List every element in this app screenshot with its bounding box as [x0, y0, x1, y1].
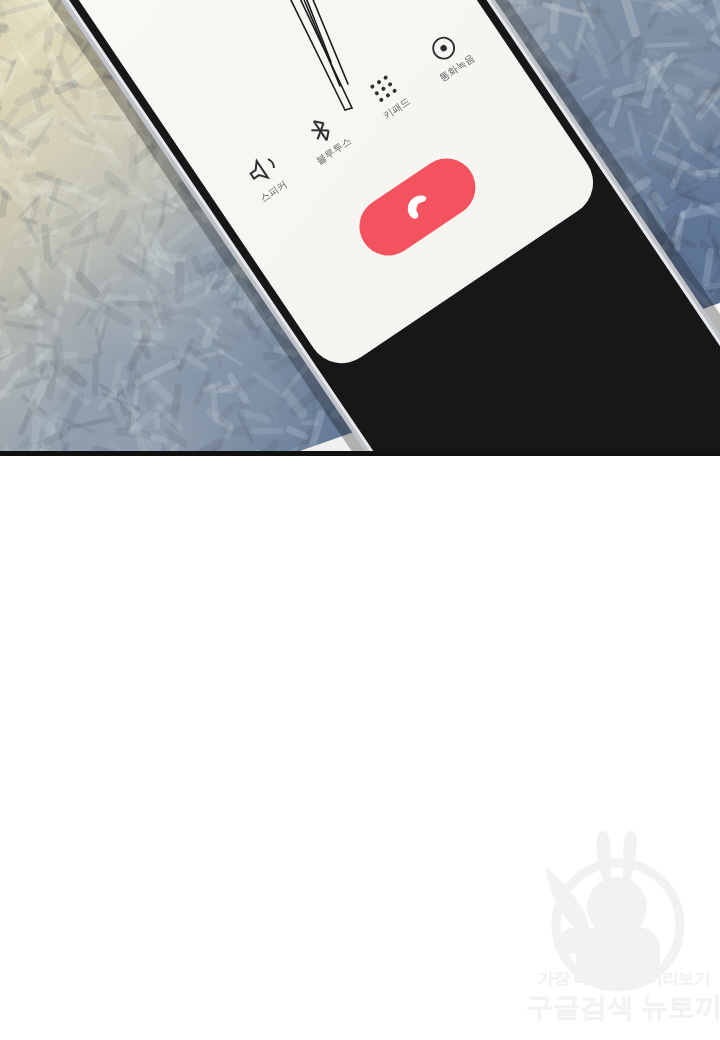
button[interactable]: Webtoon panel: phone call screen: [0, 0, 720, 1040]
